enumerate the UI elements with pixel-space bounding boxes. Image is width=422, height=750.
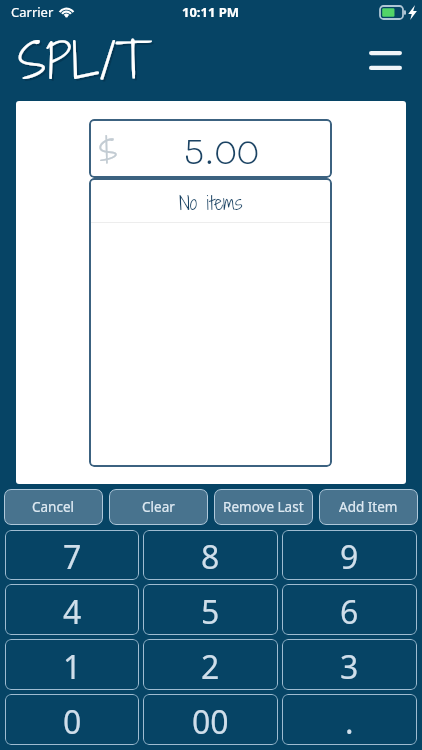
- button[interactable]: 8: [143, 530, 278, 580]
- staticText: 8: [201, 535, 220, 579]
- button[interactable]: 2: [143, 639, 278, 690]
- staticText: SPL/T: [20, 28, 149, 96]
- staticText: 7: [63, 535, 82, 579]
- button[interactable]: .: [282, 694, 417, 745]
- button[interactable]: Remove Last: [214, 489, 313, 525]
- button[interactable]: Menu: [361, 36, 409, 84]
- staticText: 3: [340, 645, 359, 689]
- button[interactable]: 0: [5, 694, 139, 745]
- staticText: 5.00: [184, 127, 260, 173]
- button[interactable]: 7: [5, 530, 139, 580]
- staticText: 4: [63, 590, 82, 634]
- staticText: No items: [179, 189, 243, 217]
- button[interactable]: 6: [282, 584, 417, 635]
- button[interactable]: 4: [5, 584, 139, 635]
- staticText: Remove Last: [223, 498, 304, 516]
- staticText: 6: [340, 590, 359, 634]
- staticText: 00: [192, 700, 229, 744]
- staticText: 2: [201, 645, 220, 689]
- staticText: Clear: [142, 498, 175, 516]
- staticText: 10:11 PM: [182, 3, 240, 21]
- staticText: $: [99, 127, 118, 172]
- button[interactable]: 5: [143, 584, 278, 635]
- staticText: 0: [63, 700, 82, 744]
- staticText: SPL/T: [18, 26, 147, 94]
- staticText: 5: [201, 590, 220, 634]
- button[interactable]: 9: [282, 530, 417, 580]
- staticText: Add Item: [339, 498, 398, 516]
- staticText: Cancel: [32, 498, 75, 516]
- button[interactable]: 1: [5, 639, 139, 690]
- staticText: 1: [63, 645, 82, 689]
- staticText: Carrier: [11, 3, 54, 21]
- button[interactable]: 00: [143, 694, 278, 745]
- staticText: 9: [340, 535, 359, 579]
- button[interactable]: 3: [282, 639, 417, 690]
- button[interactable]: Clear: [109, 489, 208, 525]
- button[interactable]: Add Item: [319, 489, 418, 525]
- button[interactable]: Cancel: [4, 489, 103, 525]
- staticText: .: [345, 700, 354, 744]
- button[interactable]: $: [89, 119, 332, 178]
